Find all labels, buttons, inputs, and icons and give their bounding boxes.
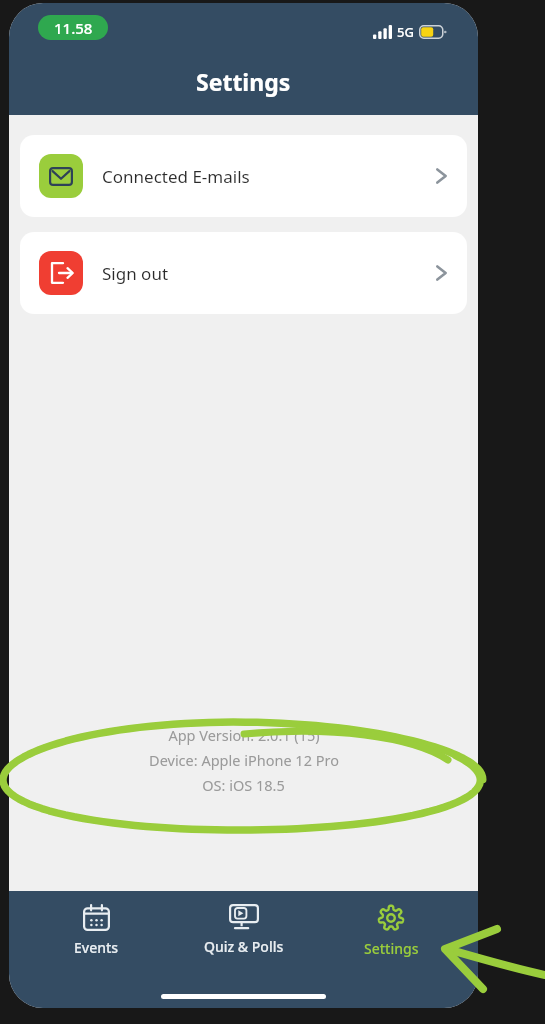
staticText: Connected E-mails: [102, 165, 250, 188]
other: Events: [83, 904, 110, 931]
staticText: Events: [74, 938, 119, 957]
button[interactable]: Settings: [331, 891, 451, 971]
staticText: Settings: [364, 939, 419, 958]
staticText: 11.58: [54, 18, 93, 38]
staticText: 5G: [397, 23, 414, 41]
staticText: Settings: [196, 66, 291, 97]
staticText: Device: Apple iPhone 12 Pro: [149, 750, 339, 770]
staticText: App Version: 2.0.1 (15): [168, 725, 320, 745]
other: Quiz & Polls: [229, 904, 259, 930]
button[interactable]: Events: [36, 891, 156, 971]
staticText: OS: iOS 18.5: [202, 775, 285, 795]
staticText: Sign out: [102, 262, 169, 285]
button[interactable]: Connected E-mails: [20, 135, 467, 217]
other: Settings: [377, 904, 405, 932]
staticText: Quiz & Polls: [204, 937, 284, 956]
button[interactable]: Sign out: [20, 232, 467, 314]
button[interactable]: Quiz & Polls: [184, 891, 304, 971]
